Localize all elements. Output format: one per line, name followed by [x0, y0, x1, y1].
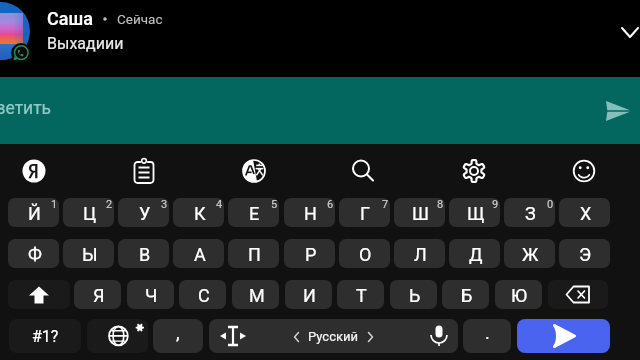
button[interactable]: Ж	[504, 239, 555, 268]
button[interactable]: Voice input	[427, 324, 451, 348]
button[interactable]: С	[179, 280, 226, 309]
staticText: Ц	[83, 203, 97, 224]
button[interactable]: Й	[8, 198, 59, 227]
staticText: 9	[492, 198, 499, 211]
button[interactable]: Б	[442, 280, 489, 309]
staticText: Ю	[511, 285, 528, 306]
button[interactable]: В	[118, 239, 169, 268]
staticText: Г	[360, 203, 371, 224]
button[interactable]: Ответить	[0, 77, 640, 144]
button[interactable]: О	[339, 239, 390, 268]
staticText: З	[525, 203, 536, 224]
button[interactable]: Clipboard	[122, 149, 166, 193]
button[interactable]: Yandex assistant	[12, 149, 56, 193]
button[interactable]: П	[228, 239, 279, 268]
button[interactable]: У	[118, 198, 169, 227]
staticText: И	[303, 285, 316, 306]
staticText: Выхадиии	[47, 34, 124, 53]
staticText: ,	[176, 322, 180, 343]
button[interactable]: Л	[394, 239, 445, 268]
staticText: Сейчас	[117, 11, 163, 27]
staticText: Й	[28, 203, 41, 224]
staticText: #1?	[32, 327, 59, 346]
staticText: Л	[414, 244, 427, 265]
button[interactable]: Ш	[394, 198, 445, 227]
staticText: .	[485, 322, 490, 343]
button[interactable]: .	[463, 319, 511, 353]
staticText: Я	[93, 285, 105, 306]
button[interactable]: Ю	[495, 280, 542, 309]
button[interactable]: Э	[559, 239, 610, 268]
staticText: Р	[305, 244, 317, 265]
button[interactable]: А	[173, 239, 224, 268]
button[interactable]: Send	[517, 319, 610, 353]
button[interactable]: Change language	[87, 319, 148, 353]
staticText: 8	[437, 198, 444, 211]
button[interactable]: Expand notification	[614, 19, 640, 47]
button[interactable]: Г	[339, 198, 390, 227]
staticText: У	[139, 203, 151, 224]
staticText: Ш	[412, 203, 429, 224]
button[interactable]: К	[173, 198, 224, 227]
staticText: Э	[579, 244, 592, 265]
staticText: Ответить	[0, 98, 52, 119]
staticText: Х	[580, 203, 592, 224]
button[interactable]: Н	[284, 198, 335, 227]
button[interactable]: З	[504, 198, 555, 227]
staticText: Ы	[82, 244, 98, 265]
staticText: Т	[356, 285, 367, 306]
staticText: 7	[382, 198, 389, 211]
staticText: Щ	[467, 203, 485, 224]
button[interactable]: ,	[153, 319, 203, 353]
button[interactable]: Search	[341, 149, 385, 193]
staticText: Н	[304, 203, 317, 224]
staticText: А	[194, 244, 206, 265]
button[interactable]: Я	[74, 280, 121, 309]
button[interactable]: Ь	[390, 280, 437, 309]
staticText: 5	[271, 198, 278, 211]
button[interactable]: #1?	[9, 319, 81, 353]
staticText: Ф	[28, 244, 42, 265]
button[interactable]: Shift	[8, 280, 70, 309]
staticText: Ж	[522, 244, 539, 265]
button[interactable]: Translate	[232, 149, 276, 193]
staticText: Ь	[409, 285, 421, 306]
button[interactable]: Д	[449, 239, 500, 268]
button[interactable]: Emoji	[562, 149, 606, 193]
button[interactable]: Move cursor	[209, 319, 458, 353]
button[interactable]: Backspace	[548, 280, 608, 309]
staticText: Б	[461, 285, 473, 306]
staticText: 2	[106, 198, 113, 211]
button[interactable]: И	[285, 280, 332, 309]
staticText: С	[198, 285, 210, 306]
staticText: Саша	[47, 8, 93, 29]
staticText: 4	[216, 198, 223, 211]
button[interactable]: Т	[337, 280, 384, 309]
staticText: Д	[469, 244, 483, 265]
button[interactable]: М	[232, 280, 279, 309]
button[interactable]: Send reply	[603, 96, 633, 126]
button[interactable]: Р	[284, 239, 335, 268]
staticText: Русский	[308, 329, 359, 344]
staticText: О	[359, 244, 372, 265]
button[interactable]: Move cursor	[217, 324, 249, 348]
button[interactable]: Ц	[63, 198, 114, 227]
button[interactable]: Х	[559, 198, 610, 227]
staticText: 1	[51, 198, 58, 211]
staticText: 3	[161, 198, 168, 211]
button[interactable]: Саша	[0, 0, 640, 77]
button[interactable]: Щ	[449, 198, 500, 227]
button[interactable]: Е	[228, 198, 279, 227]
staticText: В	[139, 244, 151, 265]
button[interactable]: Settings	[452, 149, 496, 193]
button[interactable]: Ы	[63, 239, 114, 268]
staticText: П	[248, 244, 261, 265]
staticText: 0	[547, 198, 554, 211]
staticText: 6	[327, 198, 334, 211]
staticText: М	[249, 285, 265, 306]
button[interactable]: Ч	[127, 280, 174, 309]
button[interactable]: Ф	[8, 239, 59, 268]
staticText: Е	[249, 203, 260, 224]
staticText: Ч	[145, 285, 158, 306]
staticText: К	[194, 203, 206, 224]
